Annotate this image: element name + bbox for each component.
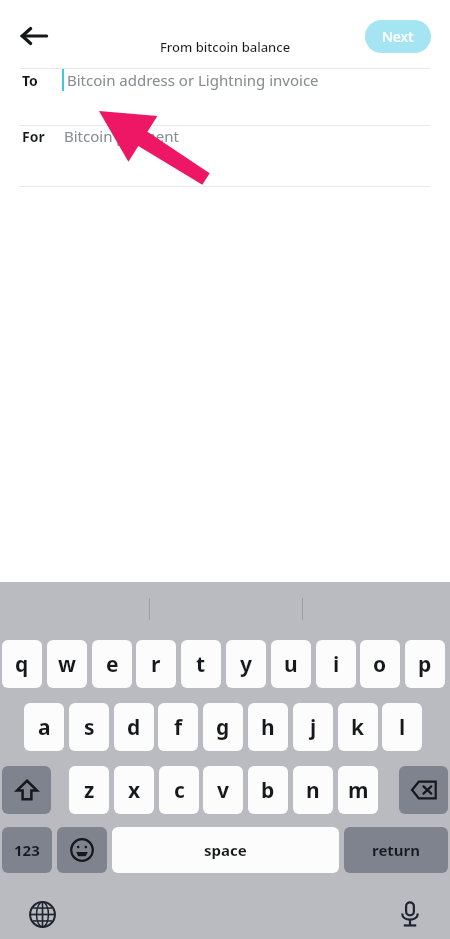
staticText: To [22,71,38,90]
button[interactable]: a [24,703,64,751]
staticText: space [204,840,247,860]
staticText: d [127,713,141,742]
staticText: b [261,776,275,805]
staticText: k [351,713,365,742]
button[interactable]: r [136,640,176,688]
button[interactable]: o [360,640,400,688]
button[interactable]: j [293,703,333,751]
button[interactable]: f [158,703,198,751]
staticText: Bitcoin address or Lightning invoice [67,70,319,90]
staticText: From bitcoin balance [160,38,291,56]
staticText: o [373,650,387,679]
button[interactable]: v [203,766,243,814]
button[interactable]: Voice input [390,894,430,934]
staticText: s [84,713,95,742]
staticText: h [261,713,275,742]
button[interactable]: For [0,126,450,186]
staticText: r [151,650,161,679]
staticText: g [216,713,230,742]
button[interactable]: b [248,766,288,814]
staticText: n [306,776,320,805]
button[interactable]: x [114,766,154,814]
staticText: Next [382,27,414,46]
button[interactable]: h [248,703,288,751]
staticText: q [15,650,29,679]
button[interactable]: m [338,766,378,814]
button[interactable]: k [338,703,378,751]
button[interactable]: s [69,703,109,751]
staticText: m [348,776,369,805]
button[interactable]: Backspace [399,766,448,814]
button[interactable]: To [0,69,450,125]
staticText: i [333,650,340,679]
staticText: v [217,776,229,805]
staticText: Bitcoin payment [64,126,179,146]
staticText: return [372,840,421,860]
button[interactable]: g [203,703,243,751]
button[interactable]: Emoji [57,827,107,873]
button[interactable]: i [316,640,356,688]
button[interactable]: t [181,640,221,688]
button[interactable]: Back [14,16,54,56]
button[interactable]: n [293,766,333,814]
staticText: f [174,713,183,742]
staticText: y [240,650,252,679]
button[interactable]: w [47,640,87,688]
button[interactable]: u [271,640,311,688]
staticText: 123 [14,840,40,860]
staticText: t [196,650,206,679]
button[interactable]: l [382,703,422,751]
staticText: l [399,713,406,742]
button[interactable]: d [114,703,154,751]
staticText: e [106,650,119,679]
button[interactable]: Next [365,20,431,53]
staticText: c [174,776,185,805]
staticText: z [84,776,95,805]
button[interactable]: e [92,640,132,688]
button[interactable]: space [112,827,339,873]
staticText: For [22,127,45,146]
button[interactable]: Shift [2,766,51,814]
button[interactable]: 123 [2,827,52,873]
staticText: w [58,650,76,679]
button[interactable]: z [69,766,109,814]
button[interactable]: p [405,640,445,688]
staticText: u [284,650,298,679]
staticText: j [310,713,317,742]
staticText: p [418,650,432,679]
button[interactable]: c [159,766,199,814]
button[interactable]: Change keyboard language [22,894,62,934]
staticText: x [128,776,141,805]
staticText: a [38,713,51,742]
button[interactable]: return [344,827,448,873]
button[interactable]: y [226,640,266,688]
button[interactable]: q [2,640,42,688]
